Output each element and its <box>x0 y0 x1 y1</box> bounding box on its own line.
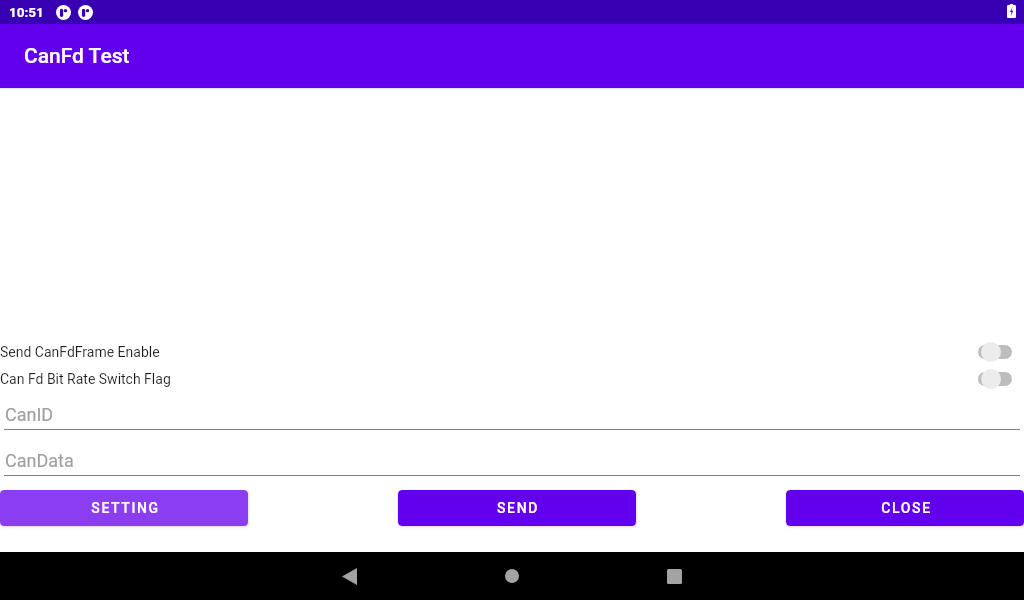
staticText: SEND <box>497 500 539 516</box>
staticText: 10:51 <box>9 4 44 20</box>
button[interactable]: SETTING <box>0 490 248 526</box>
button[interactable]: SEND <box>398 490 636 526</box>
button[interactable]: Can Fd Bit Rate Switch Flag toggle, off <box>978 368 1024 390</box>
button[interactable]: CLOSE <box>786 490 1024 526</box>
staticText: CLOSE <box>881 500 932 516</box>
staticText: Send CanFdFrame Enable <box>0 344 160 360</box>
button[interactable]: Back <box>325 552 373 600</box>
button[interactable]: CanID <box>0 401 1024 427</box>
button[interactable]: CanData <box>0 447 1024 473</box>
button[interactable]: Send CanFdFrame Enable <box>0 341 1024 363</box>
staticText: CanData <box>5 450 74 471</box>
button[interactable]: Can Fd Bit Rate Switch Flag <box>0 368 1024 390</box>
button[interactable]: Recent apps <box>650 552 698 600</box>
button[interactable]: Send CanFdFrame Enable toggle, off <box>978 341 1024 363</box>
staticText: CanID <box>5 404 54 425</box>
staticText: SETTING <box>91 500 160 516</box>
staticText: CanFd Test <box>24 44 130 69</box>
button[interactable]: Home <box>488 552 536 600</box>
staticText: Can Fd Bit Rate Switch Flag <box>0 371 171 387</box>
